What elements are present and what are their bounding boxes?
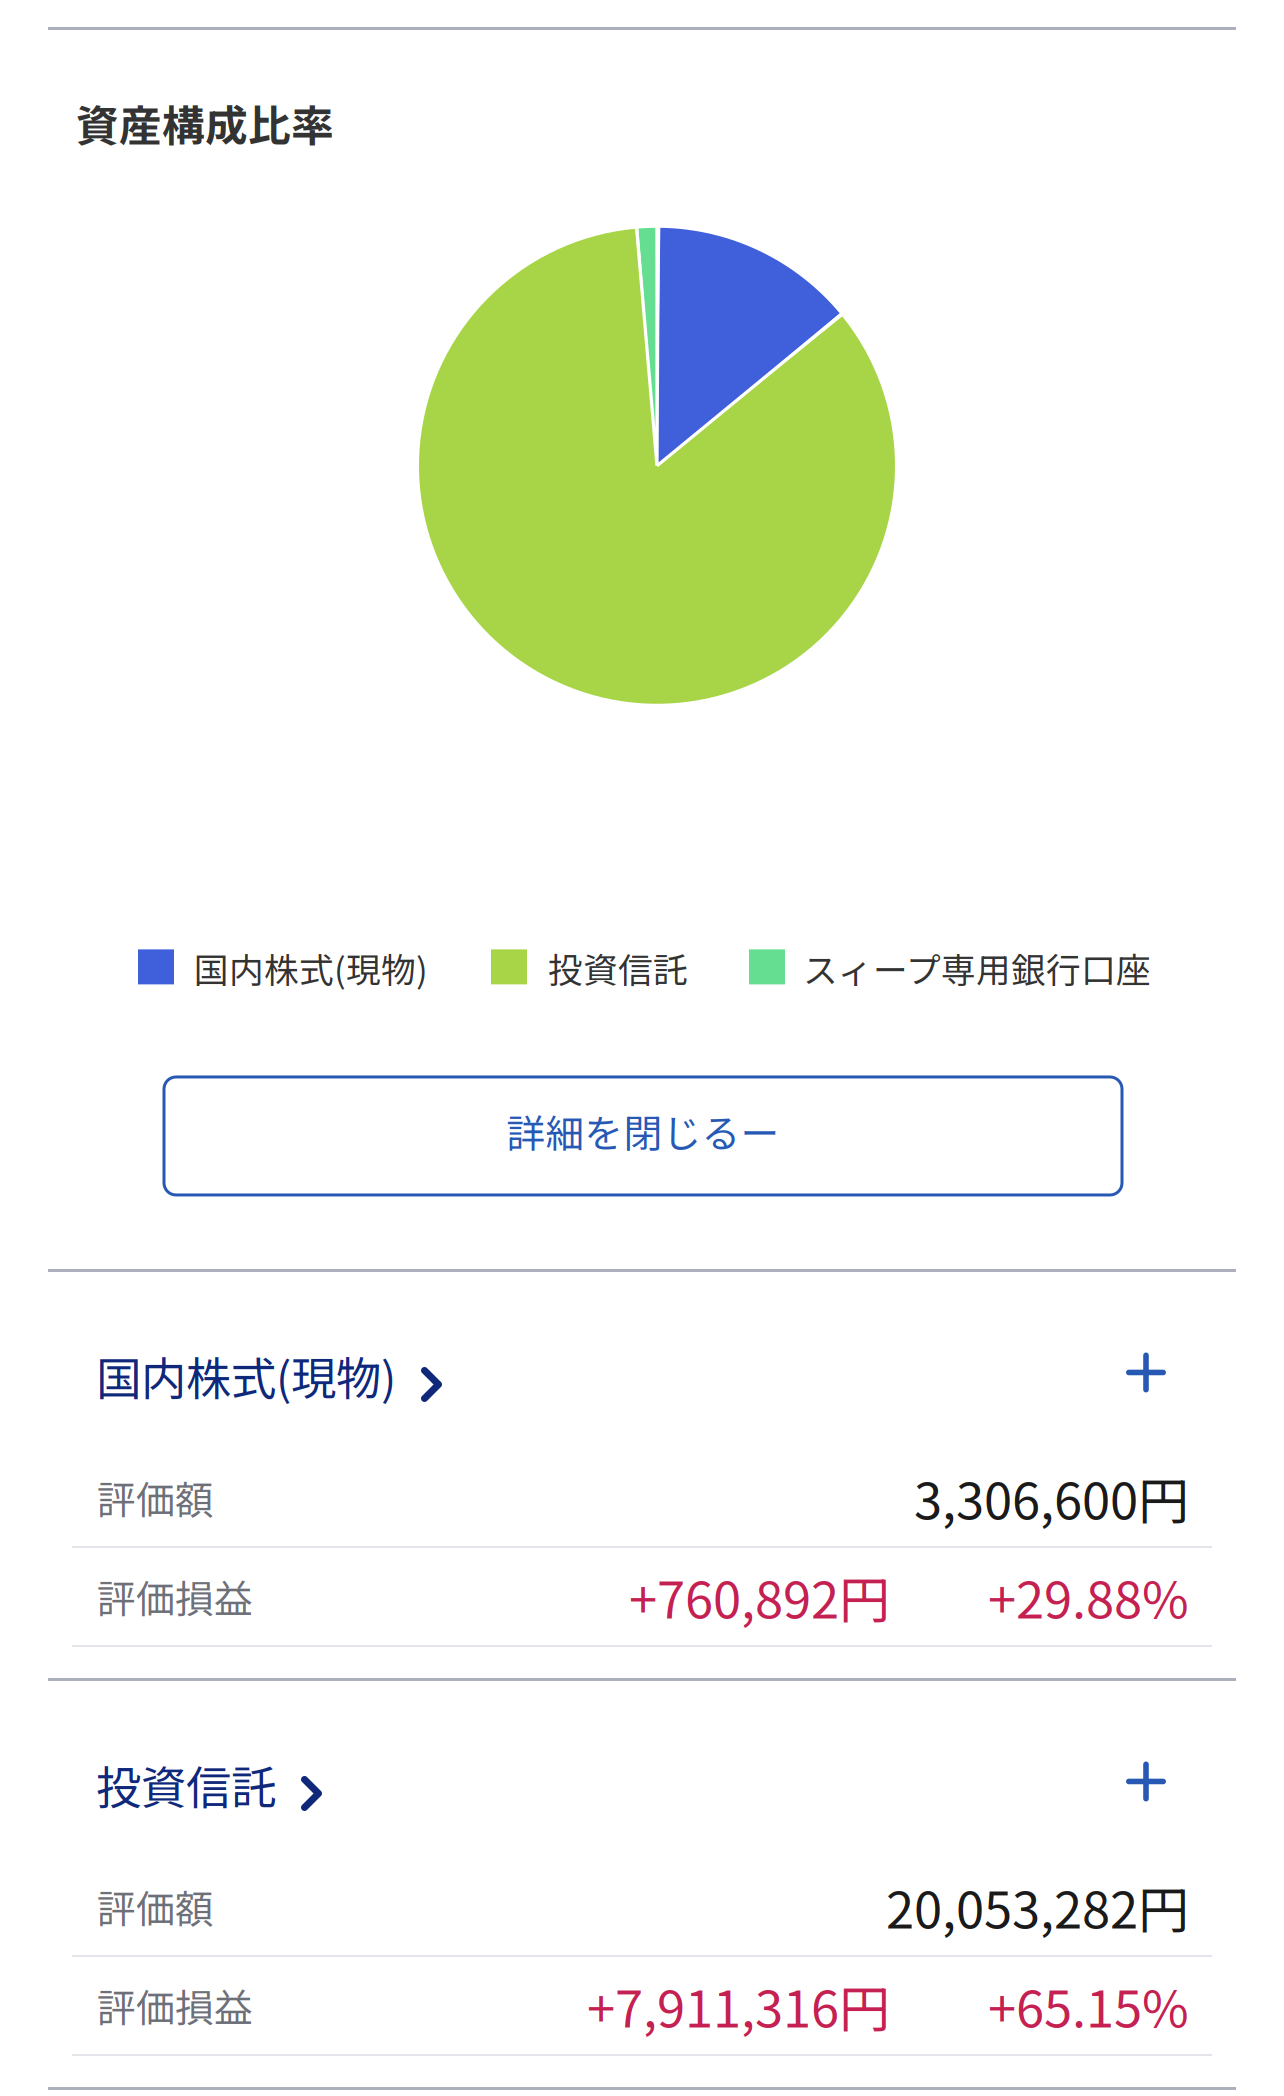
staticText: +7,911,316円 — [587, 1969, 890, 2042]
staticText: 資産構成比率 — [76, 92, 334, 154]
button[interactable]: 詳細を閉じるー — [164, 1077, 1122, 1195]
staticText: 評価損益 — [97, 1568, 253, 1624]
staticText: +65.15% — [988, 1969, 1189, 2042]
staticText: 3,306,600円 — [914, 1461, 1189, 1534]
staticText: 国内株式(現物) — [96, 1343, 396, 1408]
staticText: スィープ専用銀行口座 — [803, 943, 1151, 993]
staticText: 国内株式(現物) — [194, 943, 428, 993]
button[interactable]: 詳細を追加 — [1123, 1761, 1169, 1807]
staticText: 評価額 — [97, 1469, 214, 1525]
staticText: 評価額 — [97, 1878, 214, 1934]
button[interactable]: 国内株式(現物) — [96, 1343, 442, 1408]
staticText: 20,053,282円 — [886, 1870, 1189, 1943]
staticText: +29.88% — [988, 1560, 1189, 1633]
staticText: 投資信託 — [548, 943, 688, 993]
button[interactable]: 詳細を追加 — [1123, 1352, 1169, 1398]
staticText: +760,892円 — [629, 1560, 890, 1633]
staticText: 詳細を閉じるー — [506, 1103, 779, 1159]
staticText: 評価損益 — [97, 1977, 253, 2033]
staticText: 投資信託 — [96, 1752, 276, 1817]
button[interactable]: 投資信託 — [96, 1752, 322, 1817]
